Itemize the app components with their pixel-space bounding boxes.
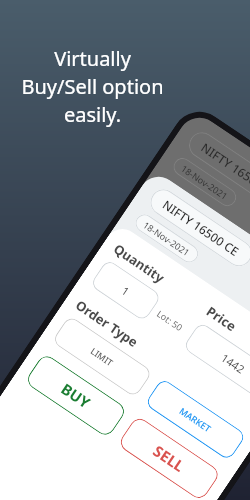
staticText: Price — [203, 302, 240, 336]
staticText: Order Type — [72, 296, 142, 351]
button[interactable]: LIMIT — [51, 315, 153, 398]
button[interactable]: MARKET — [144, 378, 247, 461]
staticText: 1442 — [218, 350, 248, 377]
button[interactable]: SELL — [117, 415, 222, 500]
staticText: NIFTY 16500 CE — [160, 196, 242, 259]
staticText: LIMIT — [89, 344, 116, 368]
staticText: SELL — [150, 441, 189, 476]
staticText: Quantity — [110, 240, 168, 287]
staticText: 18-Nov-2021 — [141, 218, 193, 258]
staticText: 18-Nov-2021 — [179, 162, 231, 202]
staticText: BUY — [58, 378, 94, 412]
staticText: Lot: 50 — [155, 307, 186, 333]
button[interactable]: BUY — [24, 352, 128, 439]
staticText: NIFTY 16500 CE — [198, 139, 250, 202]
staticText: MARKET — [177, 404, 214, 434]
staticText: Virtually Buy/Sell option easily. — [0, 45, 185, 128]
staticText: 1 — [119, 283, 133, 299]
